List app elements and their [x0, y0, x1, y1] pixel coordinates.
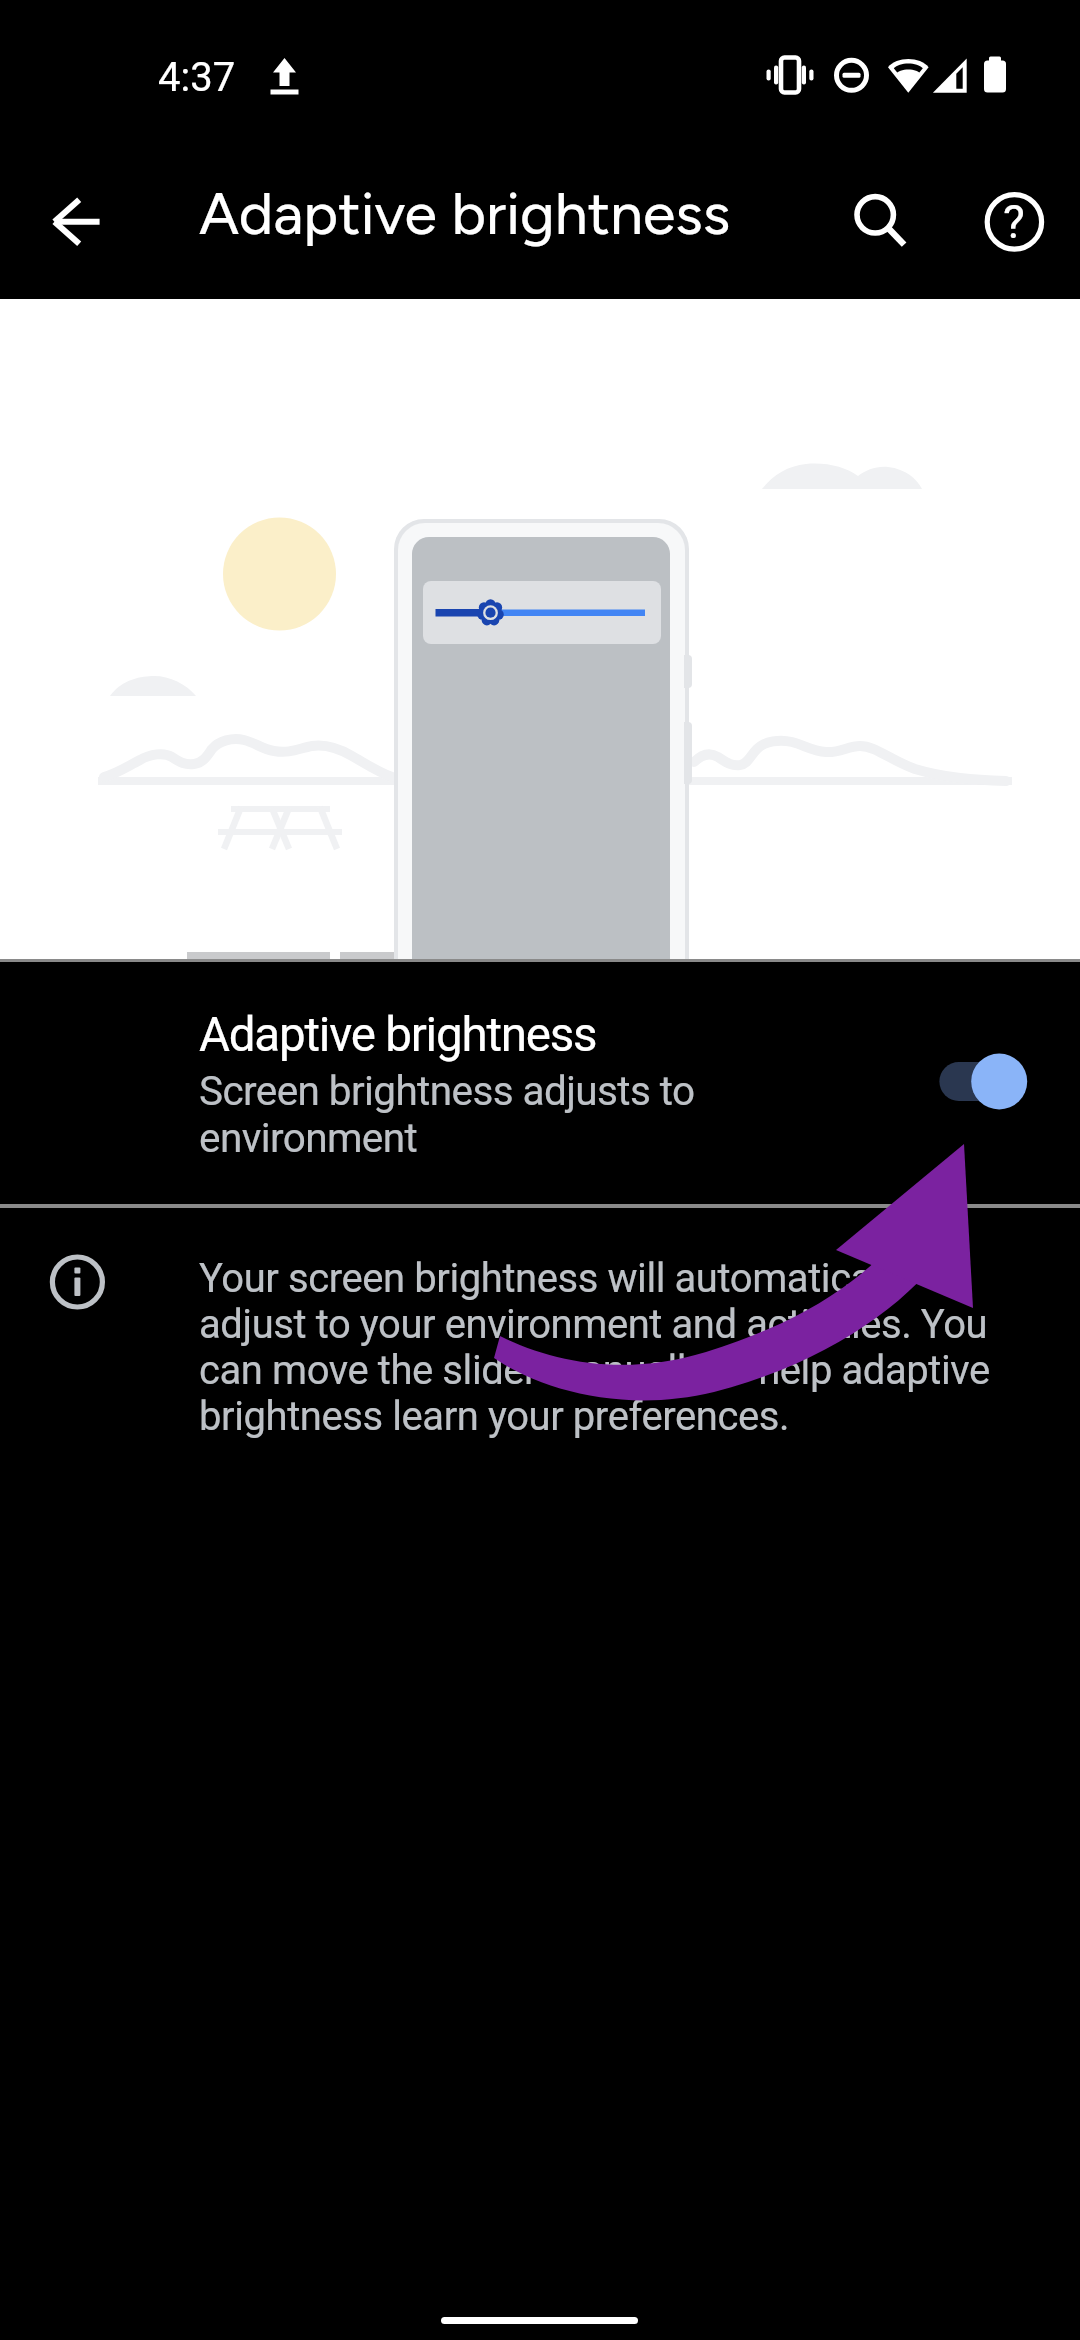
button[interactable]: Navigate up	[29, 174, 125, 270]
staticText: Adaptive brightness	[199, 178, 731, 249]
button[interactable]: Help	[966, 174, 1062, 270]
button[interactable]: Adaptive brightness toggle	[925, 1045, 1035, 1119]
staticText: Screen brightness adjusts to environment	[199, 1068, 719, 1162]
staticText: Your screen brightness will automaticall…	[199, 1255, 1004, 1439]
staticText: Adaptive brightness	[199, 1007, 597, 1063]
button[interactable]: Search	[827, 174, 923, 270]
button[interactable]: Adaptive brightness	[0, 962, 1080, 1204]
staticText: ?	[1003, 195, 1025, 249]
staticText: 4:37	[158, 54, 236, 101]
